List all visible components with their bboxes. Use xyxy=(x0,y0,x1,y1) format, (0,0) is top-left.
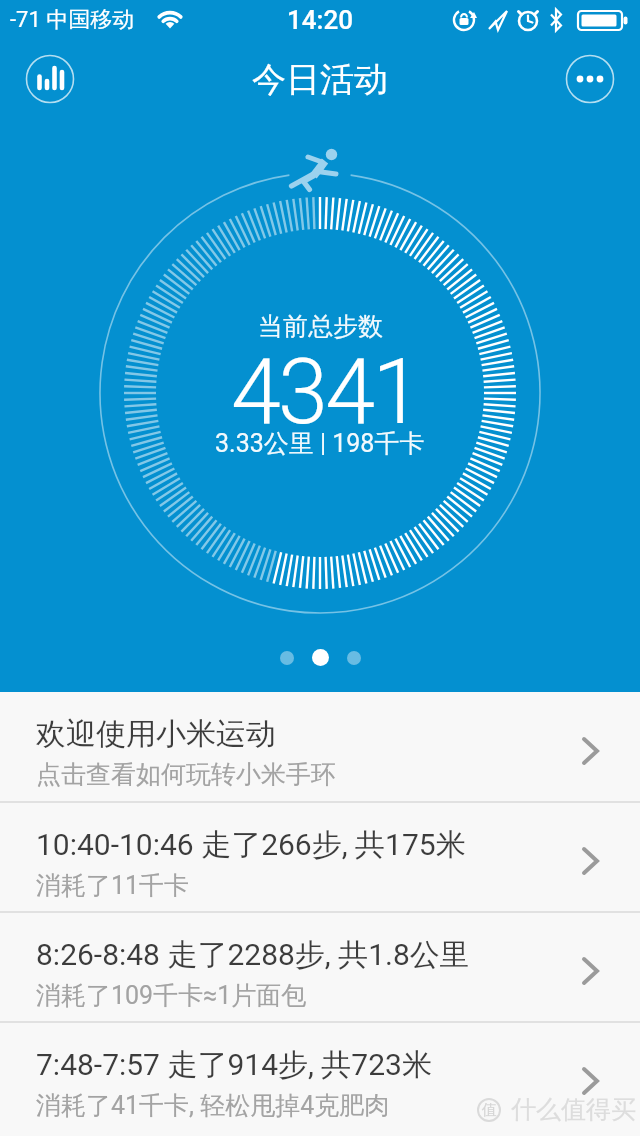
button[interactable] xyxy=(566,55,614,103)
staticText: 3.33公里 | 198千卡 xyxy=(215,428,425,459)
staticText: 消耗了41千卡, 轻松甩掉4克肥肉 xyxy=(36,1090,390,1121)
staticText: 10:40-10:46 走了266步, 共175米 xyxy=(36,826,466,864)
staticText: 消耗了11千卡 xyxy=(36,870,190,901)
staticText: 消耗了109千卡≈1片面包 xyxy=(36,980,307,1011)
button[interactable] xyxy=(347,651,361,665)
button[interactable]: 8:26-8:48 走了2288步, 共1.8公里 xyxy=(0,913,640,1021)
button[interactable]: 7:48-7:57 走了914步, 共723米 xyxy=(0,1023,640,1131)
staticText: 欢迎使用小米运动 xyxy=(36,715,276,753)
staticText: 7:48-7:57 走了914步, 共723米 xyxy=(36,1046,432,1084)
button[interactable]: 欢迎使用小米运动 xyxy=(0,692,640,801)
button[interactable] xyxy=(312,649,329,666)
button[interactable] xyxy=(26,55,74,103)
staticText: 14:20 xyxy=(287,5,354,35)
staticText: 什么值得买 xyxy=(511,1094,636,1125)
staticText: 8:26-8:48 走了2288步, 共1.8公里 xyxy=(36,936,470,974)
staticText: 4341 xyxy=(231,340,420,445)
button[interactable]: 10:40-10:46 走了266步, 共175米 xyxy=(0,803,640,911)
button[interactable] xyxy=(280,651,294,665)
staticText: 点击查看如何玩转小米手环 xyxy=(36,759,336,790)
staticText: 值 xyxy=(482,1101,497,1120)
staticText: 当前总步数 xyxy=(258,311,383,342)
staticText: 今日活动 xyxy=(252,58,388,101)
staticText: -71 中国移动 xyxy=(10,6,135,34)
